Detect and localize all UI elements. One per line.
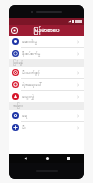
staticText: နီးစပ်စက်မှု — [22, 50, 76, 57]
button[interactable]: မီးသတ်ဖွင့် — [9, 67, 84, 78]
staticText: မီး — [22, 124, 76, 131]
staticText: သွေးလွှဲ — [22, 93, 76, 100]
button[interactable]: သွေးလွှဲ — [9, 91, 84, 102]
staticText: ရေ — [22, 112, 76, 119]
staticText: ဆေးဝါးမှု — [22, 38, 76, 45]
button[interactable]: ရဲအရေးပေါ် — [9, 79, 84, 90]
button[interactable]: နီးစပ်စက်မှု — [9, 48, 84, 59]
staticText: ပြင်ရန် — [13, 60, 23, 66]
button[interactable]: Back — [19, 154, 31, 163]
staticText: မြန်မာစာပေ — [33, 25, 60, 36]
button[interactable]: Home — [41, 154, 53, 163]
button[interactable]: မီး — [9, 122, 84, 133]
button[interactable]: Recent apps — [62, 154, 74, 163]
staticText: ရဲအရေးပေါ် — [22, 81, 76, 88]
button[interactable]: ဆေးဝါးမှု — [9, 36, 84, 47]
staticText: အခြား — [13, 103, 23, 109]
button[interactable]: ရေ — [9, 110, 84, 121]
button[interactable]: App logo — [11, 27, 18, 34]
staticText: မီးသတ်ဖွင့် — [22, 69, 76, 76]
